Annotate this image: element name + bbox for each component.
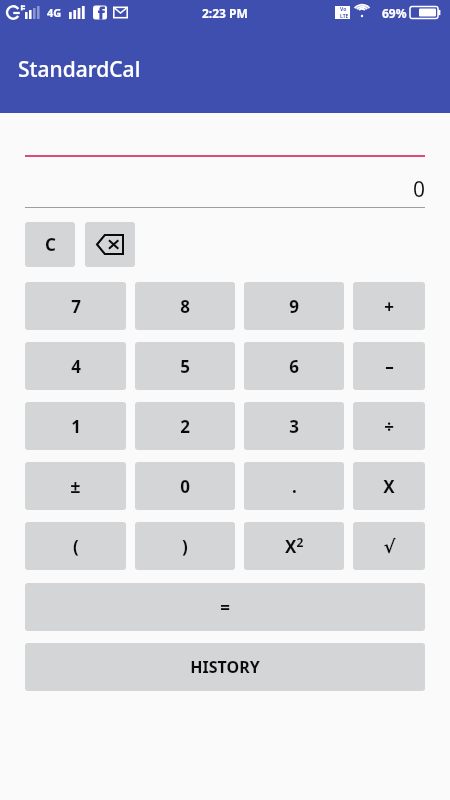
button[interactable]: 1: [25, 402, 126, 450]
staticText: Vo LTE: [340, 6, 349, 19]
button[interactable]: =: [25, 583, 425, 631]
staticText: +: [384, 295, 394, 318]
button[interactable]: –: [353, 342, 425, 390]
staticText: 5: [180, 355, 190, 378]
staticText: StandardCal: [18, 55, 141, 84]
button[interactable]: 4: [25, 342, 126, 390]
button[interactable]: X2: [244, 522, 344, 570]
staticText: 69%: [382, 5, 407, 21]
staticText: C: [45, 233, 56, 256]
button[interactable]: 0: [25, 171, 425, 207]
staticText: 6: [289, 355, 299, 378]
button[interactable]: C: [25, 222, 75, 267]
button[interactable]: +: [353, 282, 425, 330]
button[interactable]: 6: [244, 342, 344, 390]
staticText: .: [292, 475, 297, 498]
staticText: –: [385, 355, 394, 378]
button[interactable]: 8: [135, 282, 235, 330]
button[interactable]: 9: [244, 282, 344, 330]
button[interactable]: ): [135, 522, 235, 570]
button[interactable]: X: [353, 462, 425, 510]
button[interactable]: Backspace: [85, 222, 135, 267]
staticText: 0: [412, 175, 425, 204]
staticText: (: [73, 535, 79, 558]
staticText: ÷: [384, 415, 394, 438]
staticText: 7: [71, 295, 81, 318]
button[interactable]: 2: [135, 402, 235, 450]
staticText: X2: [285, 534, 304, 558]
button[interactable]: ÷: [353, 402, 425, 450]
button[interactable]: .: [244, 462, 344, 510]
button[interactable]: 3: [244, 402, 344, 450]
staticText: X: [383, 475, 395, 498]
staticText: 2:23 PM: [202, 5, 248, 21]
staticText: 4G: [47, 5, 62, 20]
staticText: ±: [70, 474, 81, 499]
staticText: =: [220, 596, 230, 619]
staticText: 9: [289, 295, 299, 318]
button[interactable]: 5: [135, 342, 235, 390]
staticText: 4: [71, 355, 81, 378]
button[interactable]: √: [353, 522, 425, 570]
staticText: √: [383, 536, 396, 557]
staticText: 0: [180, 475, 190, 498]
staticText: 8: [180, 295, 190, 318]
staticText: ): [182, 535, 188, 558]
staticText: 3: [289, 415, 299, 438]
button[interactable]: HISTORY: [25, 643, 425, 691]
button[interactable]: ±: [25, 462, 126, 510]
button[interactable]: (: [25, 522, 126, 570]
button[interactable]: 7: [25, 282, 126, 330]
button[interactable]: 0: [135, 462, 235, 510]
staticText: 2: [180, 415, 190, 438]
staticText: 1: [71, 415, 81, 438]
staticText: HISTORY: [190, 656, 260, 678]
